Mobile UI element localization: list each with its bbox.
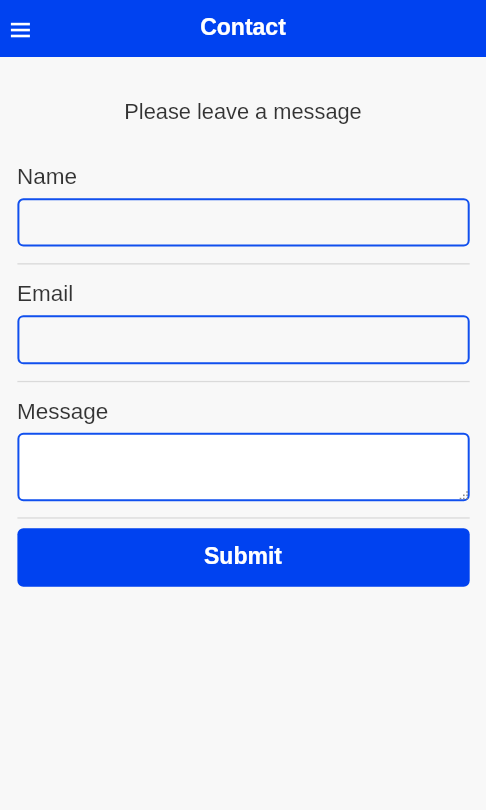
staticText: Name xyxy=(17,164,78,189)
staticText: Contact xyxy=(0,14,486,40)
staticText: Submit xyxy=(0,543,486,569)
button[interactable]: Open navigation menu xyxy=(0,0,41,57)
staticText: Message xyxy=(17,399,109,424)
staticText: Email xyxy=(17,281,74,306)
button[interactable]: Name input field xyxy=(17,198,469,246)
staticText: Please leave a message xyxy=(0,99,486,123)
button[interactable]: Submit xyxy=(17,528,469,587)
button[interactable]: Email input field xyxy=(17,315,469,364)
button[interactable]: Message input field xyxy=(17,433,469,502)
